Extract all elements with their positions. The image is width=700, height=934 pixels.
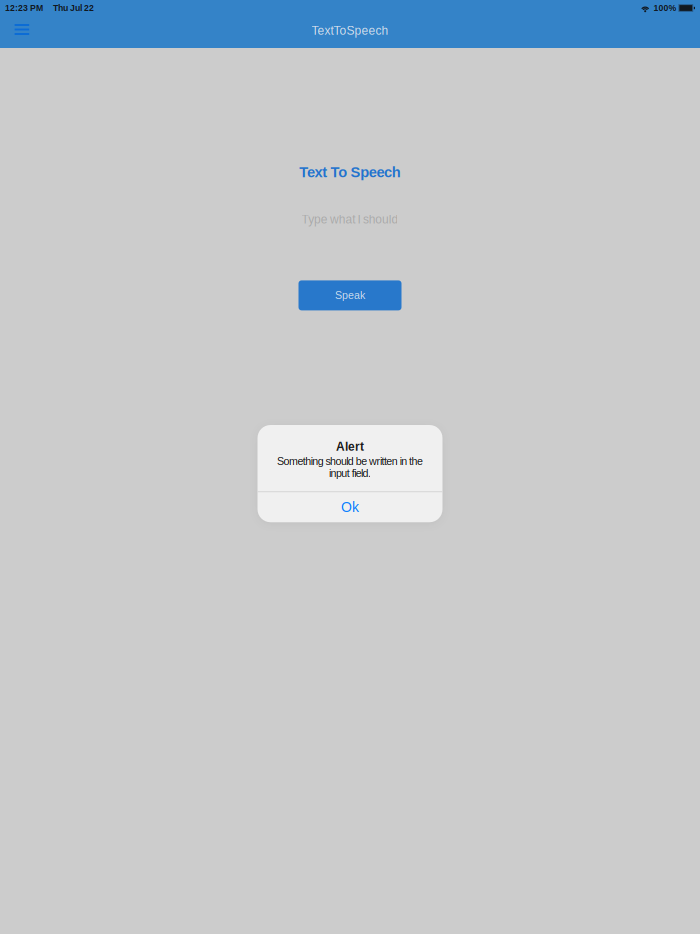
staticText: Type what I should (301, 213, 398, 226)
staticText: 12:23 PM (5, 3, 43, 13)
staticText: input field. (329, 467, 371, 479)
staticText: Thu Jul 22 (53, 3, 94, 13)
staticText: TextToSpeech (311, 24, 388, 37)
staticText: Speak (335, 289, 365, 301)
button[interactable]: Ok (257, 492, 442, 522)
staticText: Alert (336, 440, 364, 453)
staticText: Ok (341, 499, 359, 515)
staticText: 100% (653, 3, 676, 13)
staticText: Something should be written in the (277, 455, 423, 467)
button[interactable]: Type what I should (200, 211, 500, 227)
button[interactable]: Menu (0, 16, 41, 48)
button[interactable]: Speak (298, 280, 401, 310)
staticText: Text To Speech (299, 164, 401, 180)
